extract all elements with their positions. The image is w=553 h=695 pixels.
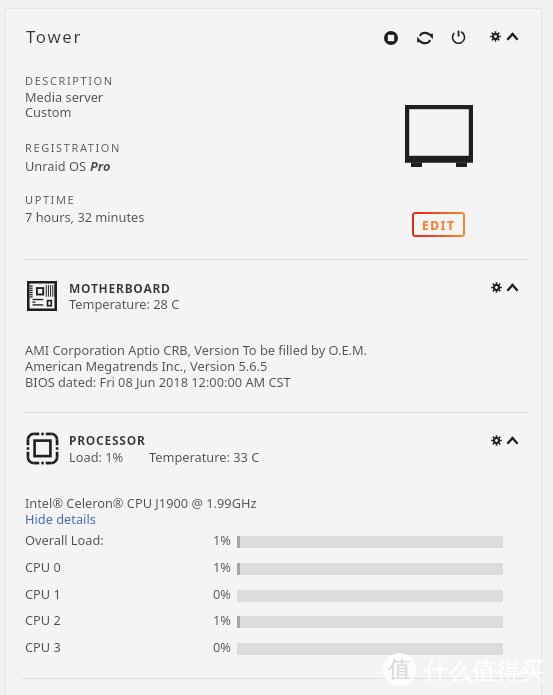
staticText: Temperature: 28 C	[69, 295, 180, 312]
button[interactable]: EDIT	[412, 212, 465, 237]
staticText: Tower	[26, 25, 83, 48]
staticText: Unraid OS	[25, 157, 90, 174]
staticText: 1%	[213, 531, 231, 548]
staticText: UPTIME	[25, 192, 76, 207]
button[interactable]: Hide details	[25, 510, 96, 527]
button[interactable]: Refresh	[412, 25, 437, 50]
staticText: 7 hours, 32 minutes	[25, 208, 145, 225]
staticText: American Megatrends Inc., Version 5.6.5	[25, 357, 268, 374]
staticText: CPU 0	[25, 558, 61, 575]
staticText: AMI Corporation Aptio CRB, Version To be…	[25, 341, 368, 358]
staticText: BIOS dated: Fri 08 Jun 2018 12:00:00 AM …	[25, 373, 291, 390]
staticText: CPU 2	[25, 611, 61, 628]
button[interactable]: Collapse processor	[503, 431, 522, 450]
button[interactable]: Collapse motherboard	[503, 278, 522, 297]
staticText: 1%	[213, 611, 231, 628]
staticText: Custom	[25, 103, 72, 120]
staticText: CPU 3	[25, 638, 61, 655]
button[interactable]	[22, 276, 282, 316]
staticText: CPU 1	[25, 585, 61, 602]
staticText: 0%	[213, 638, 231, 655]
staticText: Overall Load:	[25, 531, 104, 548]
staticText: Pro	[90, 157, 111, 174]
button[interactable]: Collapse	[503, 27, 522, 46]
staticText: 值	[388, 655, 411, 684]
staticText: DESCRIPTION	[25, 73, 114, 88]
button[interactable]: Motherboard settings	[486, 277, 506, 297]
staticText: 什么值得买	[424, 656, 544, 686]
staticText: REGISTRATION	[25, 140, 121, 155]
staticText: Temperature: 33 C	[149, 448, 260, 465]
staticText: PROCESSOR	[69, 432, 146, 448]
button[interactable]: Processor settings	[486, 430, 506, 450]
button[interactable]: Stop	[378, 25, 403, 50]
staticText: Hide details	[25, 510, 96, 527]
staticText: EDIT	[422, 217, 456, 233]
button[interactable]	[22, 429, 282, 469]
staticText: MOTHERBOARD	[69, 280, 171, 296]
staticText: 1%	[213, 558, 231, 575]
staticText: Intel® Celeron® CPU J1900 @ 1.99GHz	[25, 494, 257, 511]
button[interactable]: Power	[446, 24, 471, 49]
staticText: Media server	[25, 88, 104, 105]
staticText: Load: 1%	[69, 448, 124, 465]
button[interactable]: Settings	[485, 26, 505, 46]
staticText: 0%	[213, 585, 231, 602]
